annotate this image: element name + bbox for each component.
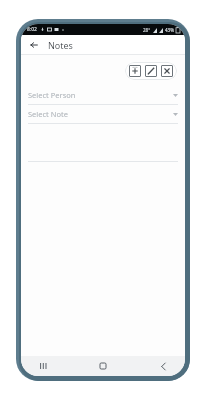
button[interactable]: Delete note bbox=[161, 65, 173, 77]
staticText: 28° bbox=[143, 27, 151, 33]
button[interactable]: Add note bbox=[129, 65, 141, 77]
button[interactable]: Edit note bbox=[145, 65, 157, 77]
staticText: 8:02 bbox=[27, 26, 37, 33]
button[interactable]: Back bbox=[155, 358, 171, 374]
staticText: Notes bbox=[48, 39, 73, 51]
button[interactable]: Back bbox=[27, 38, 41, 52]
staticText: Select Note bbox=[28, 109, 68, 119]
staticText: Select Person bbox=[28, 90, 76, 100]
button[interactable]: Home bbox=[95, 358, 111, 374]
staticText: 43% bbox=[165, 27, 174, 33]
button[interactable]: Select Note bbox=[21, 105, 185, 124]
button[interactable]: Select Person bbox=[21, 86, 185, 105]
button[interactable]: Recents bbox=[35, 358, 51, 374]
